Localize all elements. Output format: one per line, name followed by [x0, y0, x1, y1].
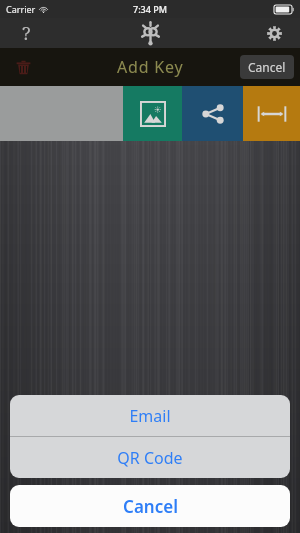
staticText: Email	[129, 405, 171, 427]
staticText: ?	[22, 21, 31, 46]
staticText: 7:34 PM	[133, 3, 167, 15]
staticText: Cancel	[248, 59, 286, 75]
button[interactable]: Share	[182, 86, 243, 141]
button[interactable]: Help	[0, 18, 52, 48]
button[interactable]: Delete	[0, 48, 46, 86]
button[interactable]: Choose photo	[123, 86, 182, 141]
button[interactable]: Logo	[128, 18, 172, 48]
button[interactable]: Cancel	[240, 55, 294, 79]
staticText: Add Key	[117, 56, 184, 78]
button[interactable]: Resize	[243, 86, 300, 141]
button[interactable]: QR Code	[10, 437, 290, 478]
staticText: QR Code	[117, 447, 183, 469]
button[interactable]: Settings	[248, 18, 300, 48]
staticText: Carrier	[6, 3, 36, 15]
button[interactable]: Cancel	[10, 485, 290, 527]
button[interactable]: Email	[10, 395, 290, 436]
staticText: Cancel	[123, 495, 178, 518]
